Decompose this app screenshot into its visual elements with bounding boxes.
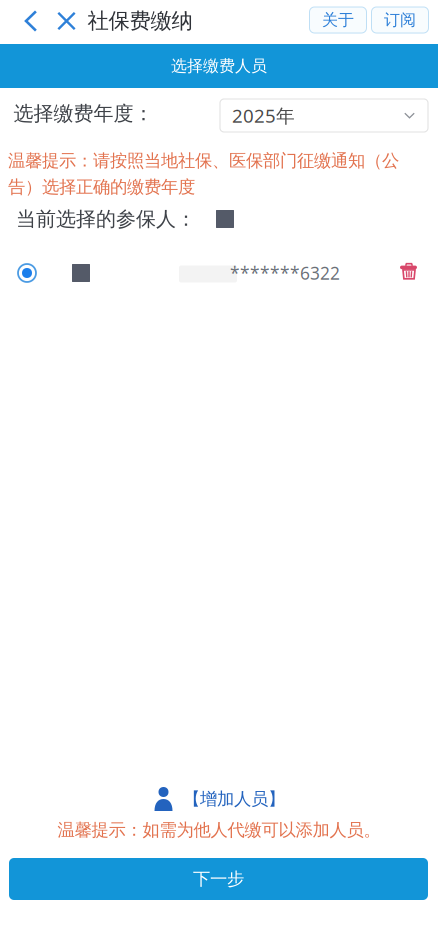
button[interactable]: 【增加人员】 [153,787,285,811]
button[interactable]: Close [50,0,82,43]
staticText: 2025年 [232,103,295,128]
staticText: 【增加人员】 [183,788,285,810]
staticText: 订阅 [384,10,416,30]
staticText: 选择缴费人员 [171,56,267,76]
staticText: 温馨提示：请按照当地社保、医保部门征缴通知（公告）选择正确的缴费年度 [8,150,399,198]
button[interactable]: *******6322 [0,245,438,301]
staticText: 当前选择的参保人： [16,207,196,231]
staticText: 选择缴费年度： [13,101,153,126]
staticText: 关于 [322,10,354,30]
button[interactable]: Back [16,0,46,43]
staticText: 温馨提示：如需为他人代缴可以添加人员。 [57,819,380,841]
button[interactable]: 订阅 [371,7,428,33]
button[interactable]: 2025年 [220,99,428,132]
staticText: 社保费缴纳 [87,8,192,34]
button[interactable]: 下一步 [9,858,428,900]
staticText: 下一步 [193,868,244,890]
staticText: *******6322 [230,261,340,284]
button[interactable]: 关于 [309,7,366,33]
